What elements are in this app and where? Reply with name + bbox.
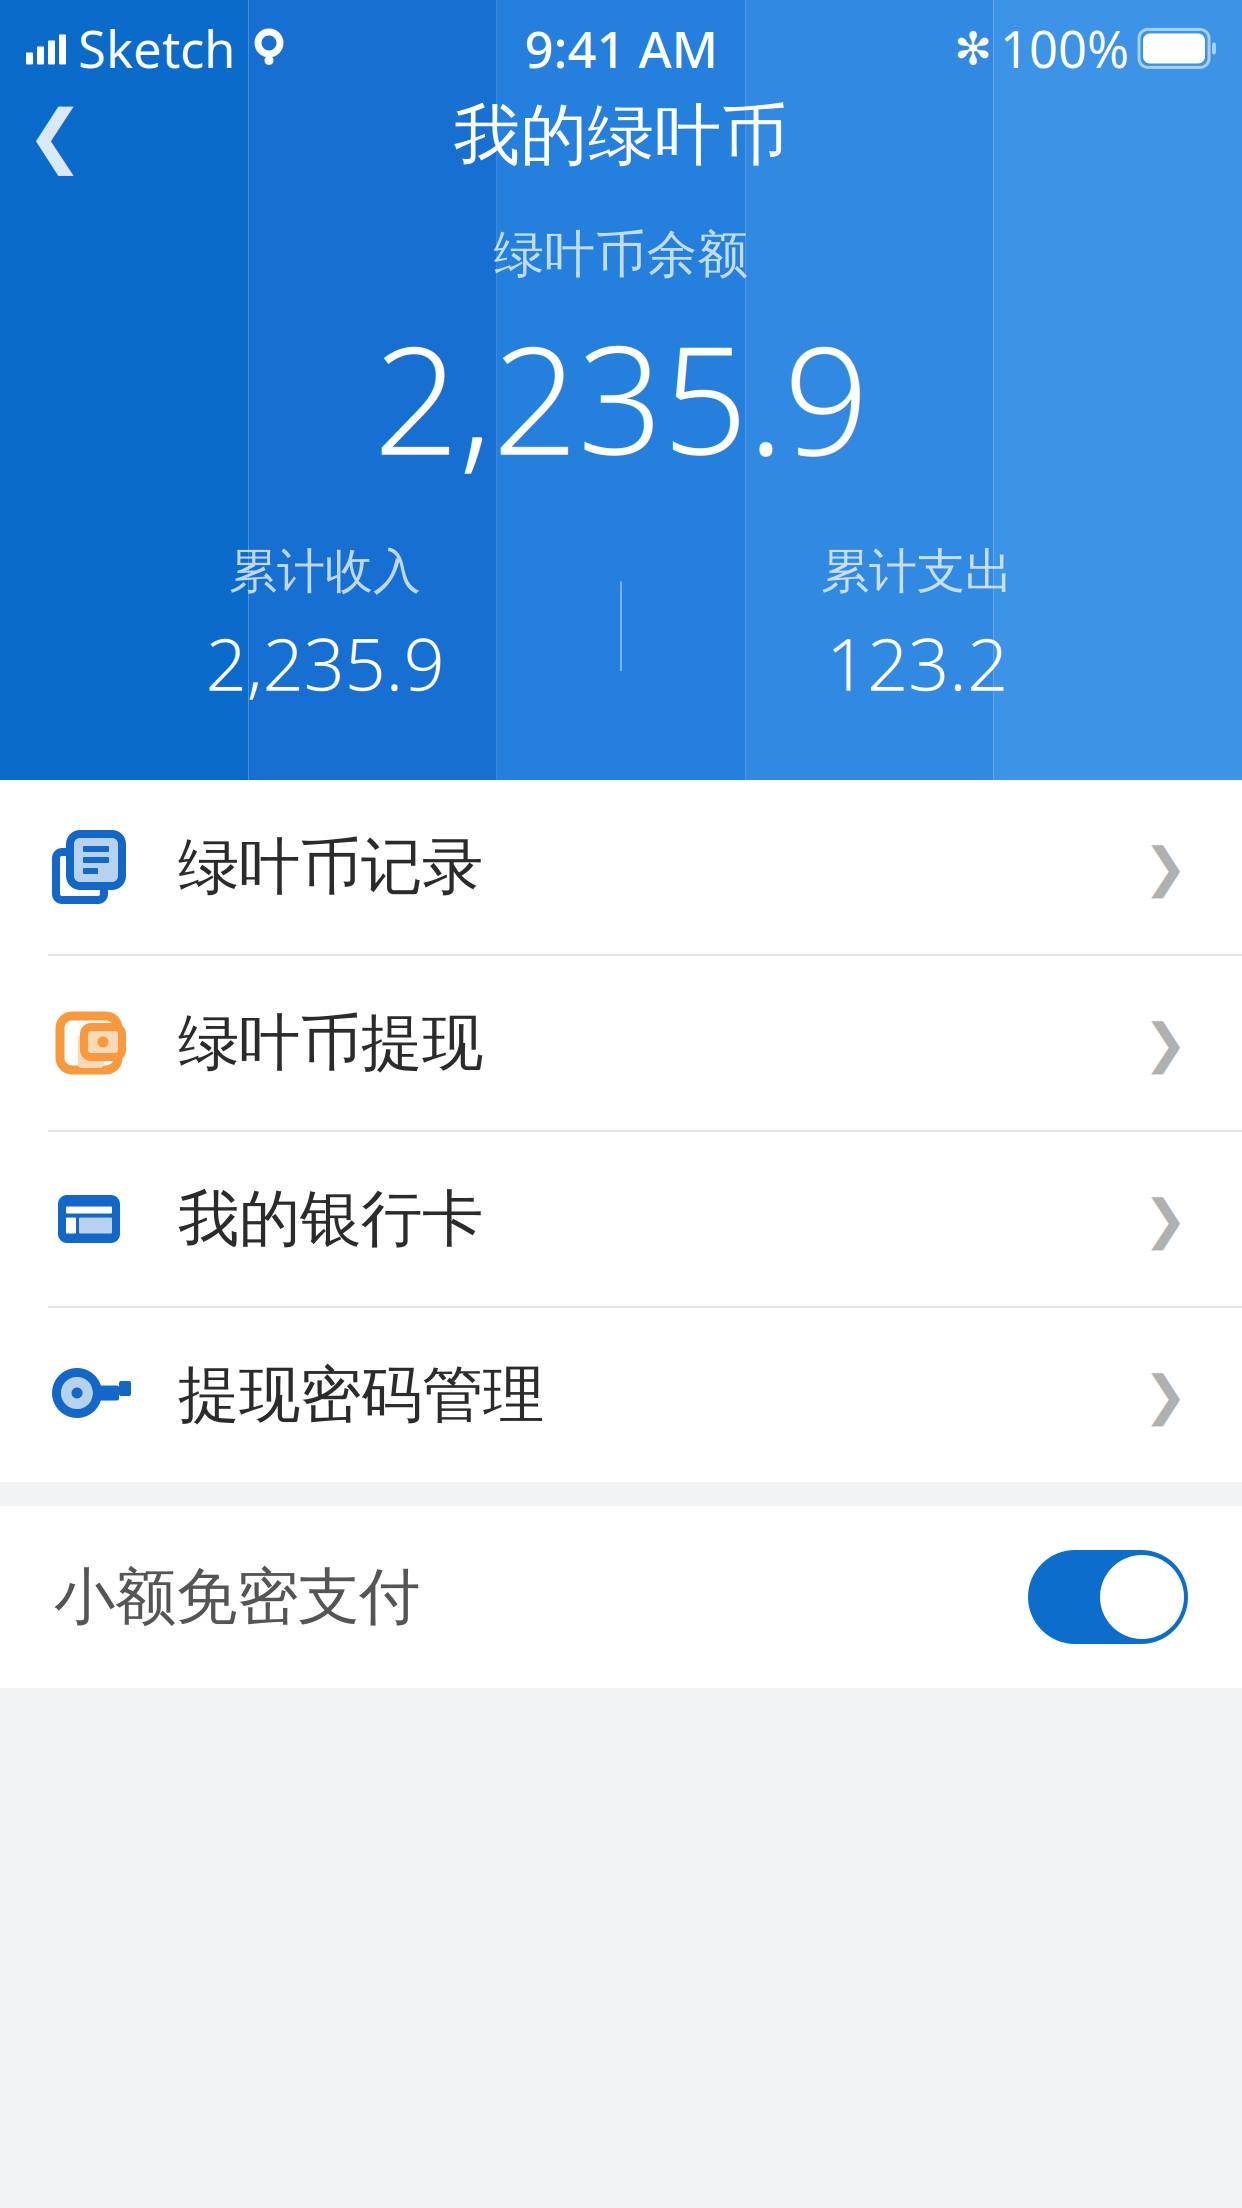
staticText: ❯ xyxy=(1143,1013,1188,1073)
staticText: 2,235.9 xyxy=(205,615,444,710)
button[interactable]: 我的银行卡 xyxy=(0,1132,1242,1306)
staticText: 累计收入 xyxy=(229,542,421,601)
staticText: ❯ xyxy=(1143,1189,1188,1249)
staticText: Sketch xyxy=(78,15,235,82)
button[interactable]: 小额免密支付 xyxy=(0,1506,1242,1688)
staticText: 我的绿叶币 xyxy=(453,94,788,176)
staticText: 9:41 AM xyxy=(524,15,718,82)
staticText: ❯ xyxy=(1143,837,1188,897)
staticText: 绿叶币提现 xyxy=(178,1005,483,1081)
staticText: 小额免密支付 xyxy=(54,1559,420,1635)
staticText: ❯ xyxy=(1143,1365,1188,1425)
button[interactable]: 提现密码管理 xyxy=(0,1308,1242,1482)
staticText: 提现密码管理 xyxy=(178,1357,544,1433)
staticText: ❮ xyxy=(26,96,84,175)
button[interactable]: 绿叶币记录 xyxy=(0,780,1242,954)
button[interactable]: Back xyxy=(0,85,110,185)
staticText: 2,235.9 xyxy=(373,298,868,496)
staticText: 我的银行卡 xyxy=(178,1181,483,1257)
button[interactable]: 绿叶币提现 xyxy=(0,956,1242,1130)
staticText: 累计支出 xyxy=(821,542,1013,601)
staticText: 绿叶币余额 xyxy=(493,223,748,286)
staticText: ✻ xyxy=(954,23,992,74)
staticText: 123.2 xyxy=(826,615,1008,710)
staticText: 100% xyxy=(1000,15,1129,82)
staticText: 绿叶币记录 xyxy=(178,829,483,905)
